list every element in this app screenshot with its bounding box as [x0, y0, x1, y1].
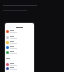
button[interactable]	[5, 66, 34, 70]
button[interactable]	[5, 29, 34, 33]
button[interactable]	[5, 45, 34, 49]
button[interactable]	[5, 35, 34, 39]
button[interactable]	[5, 40, 34, 44]
button[interactable]	[5, 50, 34, 54]
button[interactable]	[5, 62, 34, 66]
